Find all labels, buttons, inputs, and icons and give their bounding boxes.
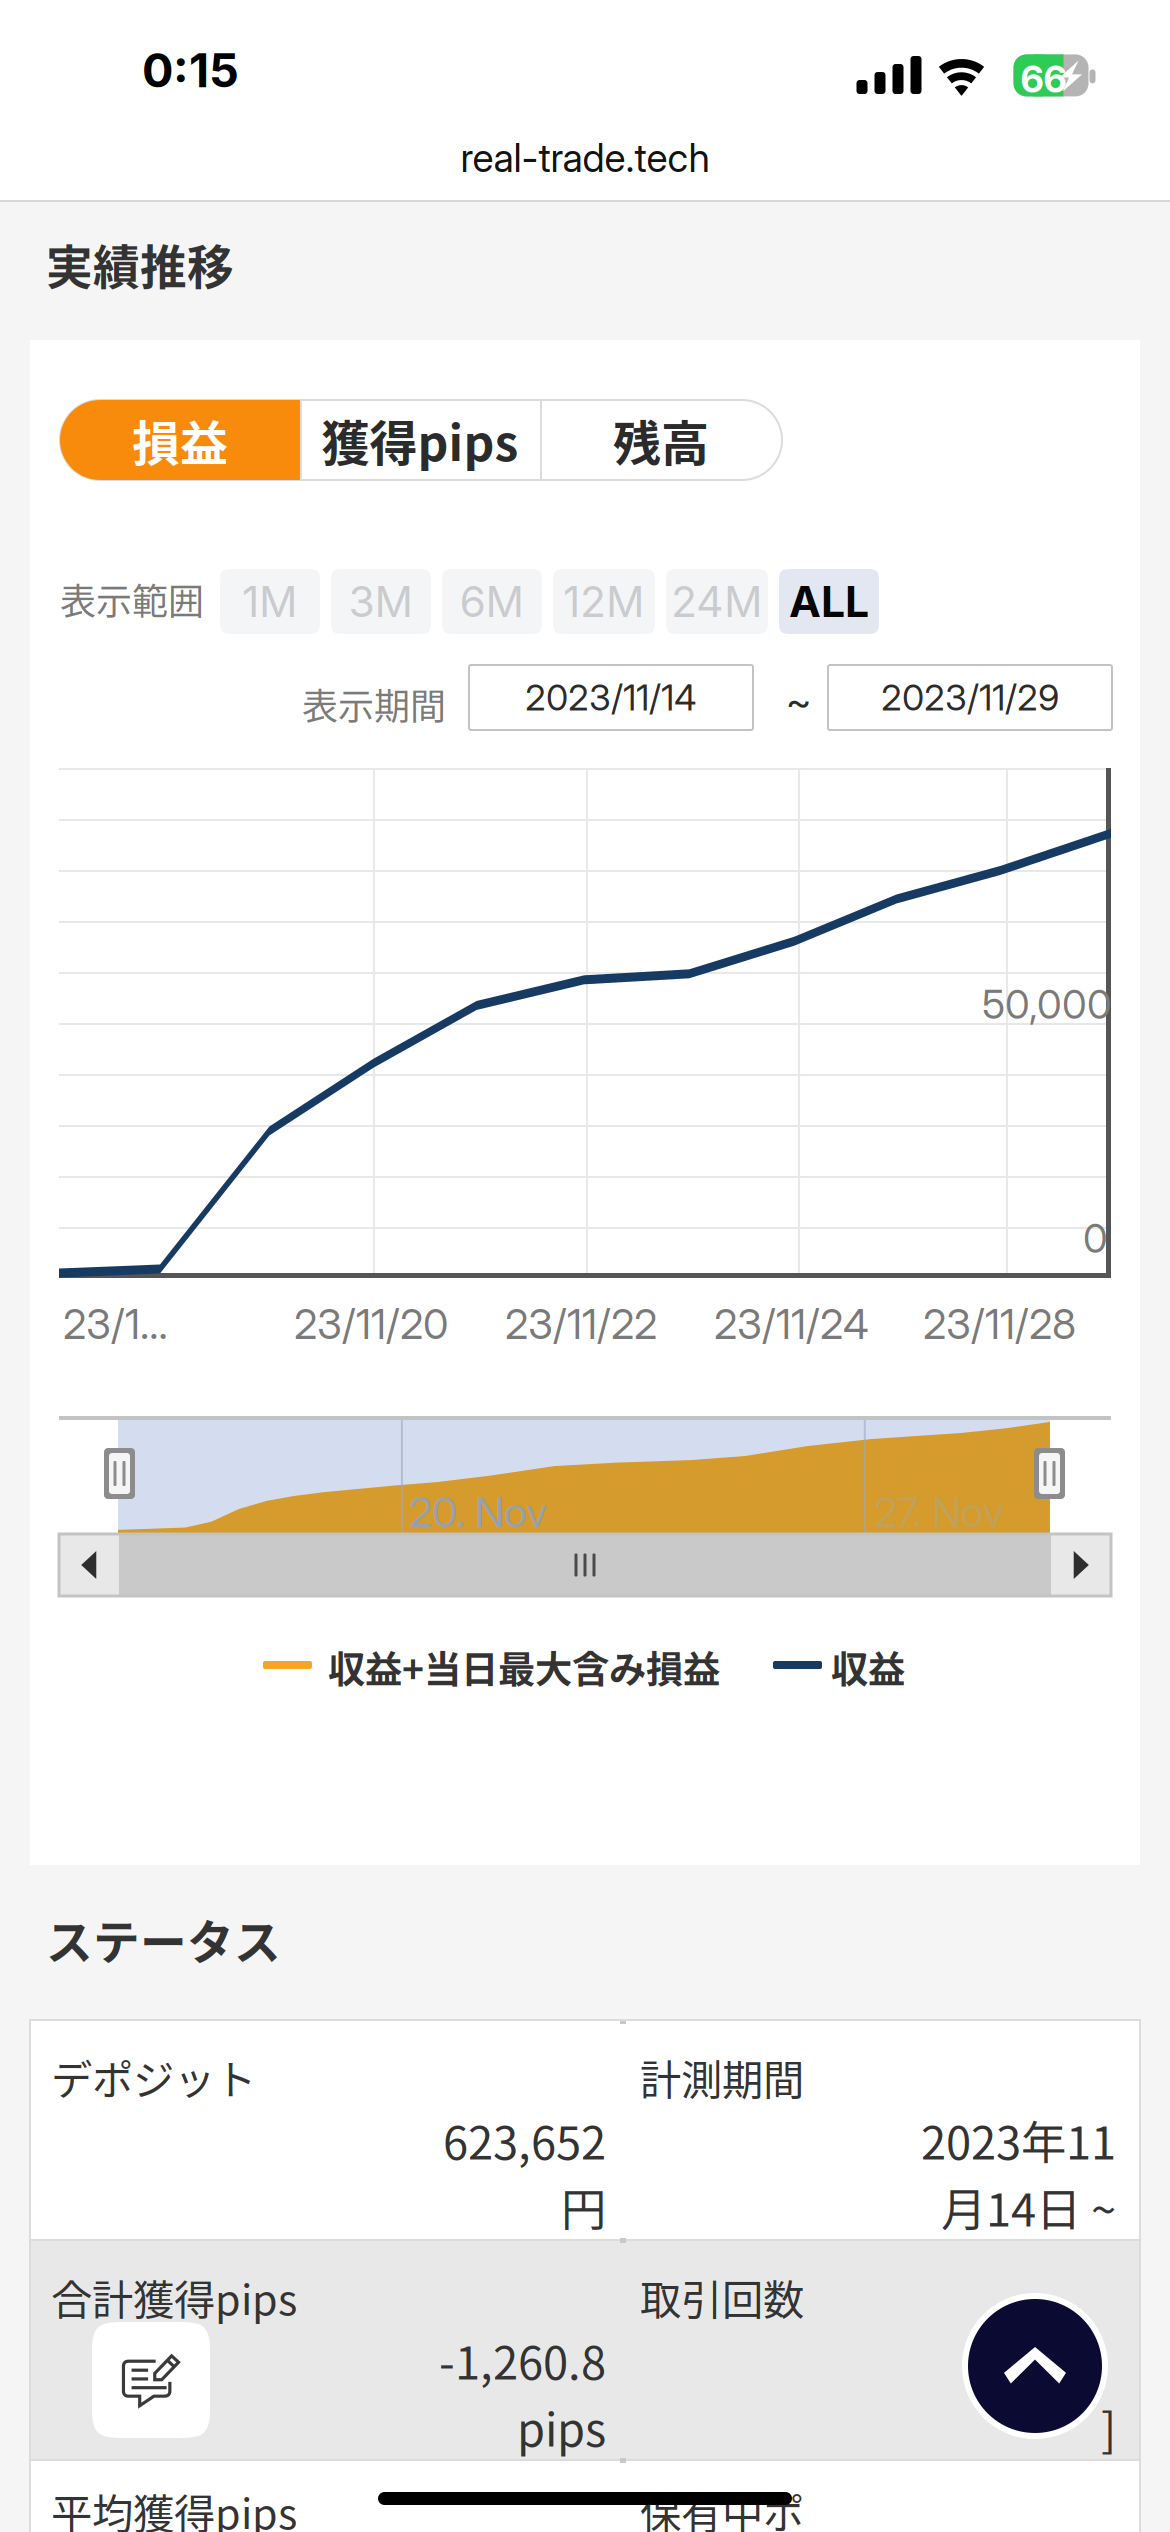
staticText: 23/11/22 [505,1299,657,1349]
button[interactable]: 獲得pips [300,400,540,480]
button[interactable]: Scroll right [1051,1534,1111,1596]
staticText: 計測期間 [640,2047,804,2107]
staticText: 表示範囲 [60,573,204,625]
staticText: 12M [563,576,645,627]
staticText: ] [1101,2394,1116,2460]
button[interactable]: 3M [331,569,431,634]
staticText: 取引回数 [640,2267,804,2327]
staticText: 2023/11/14 [525,676,697,719]
button[interactable]: Chat [92,2322,210,2438]
staticText: デポジット [51,2047,256,2107]
button[interactable]: Scroll to top [962,2293,1108,2439]
button[interactable]: 1M [220,569,320,634]
staticText: 23/11/24 [714,1299,869,1349]
staticText: 23/1… [63,1299,168,1349]
staticText: 23/11/28 [923,1299,1076,1349]
staticText: 623,652 [443,2107,606,2173]
staticText: 23/11/20 [294,1299,448,1349]
staticText: 24M [671,576,763,627]
button[interactable]: 6M [442,569,542,634]
button[interactable]: 損益 [60,400,300,480]
staticText: 円 [561,2174,606,2240]
staticText: 1M [242,576,298,627]
staticText: -1,260.8 [439,2327,606,2393]
staticText: 残高 [613,405,709,475]
staticText: 実績推移 [46,230,234,298]
staticText: 66 [1020,56,1066,102]
staticText: 獲得pips [321,405,518,475]
staticText: ~ [786,677,811,725]
staticText: 合計獲得pips [51,2267,297,2327]
button[interactable]: 残高 [540,400,782,480]
staticText: 収益 [831,1640,905,1694]
staticText: 0:15 [142,42,239,98]
button[interactable]: 2023/11/29 [828,665,1112,730]
staticText: 50,000 [982,980,1112,1028]
staticText: 3M [348,576,413,627]
button[interactable]: ALL [779,569,879,634]
staticText: 2023年11 [921,2107,1116,2173]
staticText: 27. Nov [874,1487,1004,1537]
staticText: 表示期間 [302,678,446,730]
staticText: ALL [789,576,869,627]
staticText: 20. Nov [409,1487,547,1537]
button[interactable]: 24M [666,569,768,634]
staticText: 平均獲得pips [51,2481,297,2532]
staticText: 6M [459,576,524,627]
staticText: 2023/11/29 [881,676,1059,719]
button[interactable]: 2023/11/14 [469,665,753,730]
staticText: 0 [1083,1214,1108,1262]
staticText: 損益 [132,405,228,475]
staticText: real-trade.tech [460,135,709,181]
button[interactable]: 12M [553,569,655,634]
button[interactable]: Scroll left [59,1534,119,1596]
staticText: pips [517,2394,606,2460]
staticText: 保有中ポ [640,2481,804,2532]
staticText: 月14日 ~ [941,2174,1116,2240]
staticText: 収益+当日最大含み損益 [328,1640,720,1694]
staticText: ステータス [46,1905,281,1973]
